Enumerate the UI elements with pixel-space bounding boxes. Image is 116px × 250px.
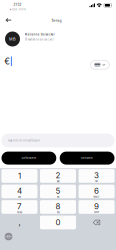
button[interactable]: 6 [78, 185, 115, 198]
button[interactable]: Anfordern [1, 152, 56, 165]
staticText: 1 [18, 171, 21, 181]
button[interactable]: Payment method [90, 60, 109, 69]
staticText: Betrag [52, 19, 62, 22]
staticText: WXYZ [94, 211, 99, 214]
staticText: @MarianneBeisecker [25, 38, 54, 41]
button[interactable]: 8 [40, 200, 76, 214]
staticText: 21:32 [14, 3, 22, 7]
staticText: ABC [56, 180, 59, 183]
button[interactable]: 2 [40, 169, 76, 183]
staticText: TUV [56, 211, 59, 214]
staticText: Marianne Beisecker [25, 33, 55, 36]
staticText: 7 [17, 202, 22, 211]
button[interactable]: 7 [1, 200, 37, 214]
button[interactable]: Back [0, 15, 15, 25]
staticText: Senden [81, 156, 93, 160]
staticText: App Store [12, 8, 26, 11]
staticText: 6 [94, 186, 99, 196]
staticText: 8 [55, 202, 60, 211]
button[interactable]: 5 [40, 185, 76, 198]
button[interactable]: Comma [1, 216, 37, 229]
staticText: GHI [18, 196, 21, 198]
staticText: DEF [95, 180, 98, 183]
staticText: PQRS [17, 211, 22, 214]
staticText: MB [9, 37, 16, 41]
staticText: 3 [94, 171, 99, 180]
button[interactable]: 3 [78, 169, 115, 183]
button[interactable]: Delete [78, 216, 115, 229]
staticText: 5 [55, 186, 60, 196]
staticText: , [18, 218, 20, 227]
staticText: MNO [94, 196, 100, 198]
staticText: € [4, 56, 10, 66]
button[interactable]: 0 [40, 216, 76, 229]
staticText: Anfordern [21, 156, 36, 160]
button[interactable]: 4 [1, 185, 37, 198]
staticText: 0 [55, 218, 60, 227]
button[interactable]: Senden [60, 152, 114, 165]
staticText: JKL [56, 196, 59, 198]
staticText: 4 [17, 186, 22, 196]
button[interactable]: Next keyboard [0, 233, 12, 240]
button[interactable]: Nachricht hinzufügen [1, 134, 115, 147]
staticText: 2 [55, 171, 60, 180]
button[interactable]: 9 [78, 200, 115, 214]
staticText: Nachricht hinzufügen [8, 139, 40, 142]
staticText: 9 [94, 202, 99, 211]
button[interactable]: 1 [1, 169, 37, 183]
